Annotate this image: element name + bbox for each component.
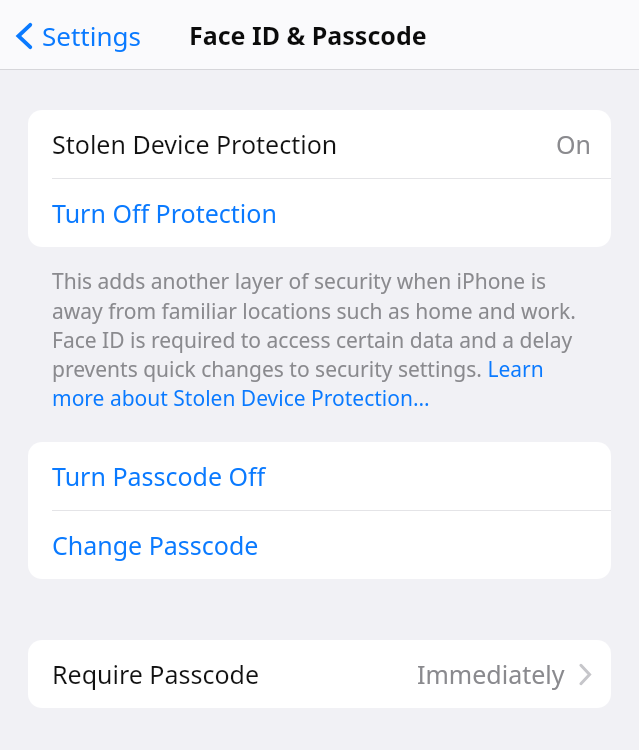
button[interactable]: Turn Passcode Off [28,442,611,510]
staticText: Turn Off Protection [52,196,277,230]
button[interactable]: Turn Off Protection [28,179,611,247]
staticText: On [556,127,591,161]
staticText: Change Passcode [52,528,259,562]
staticText: Immediately [417,657,565,691]
button[interactable]: Settings [10,12,151,59]
other: Open Require Passcode options [579,664,591,685]
staticText: This adds another layer of security when… [52,267,593,412]
staticText: Settings [42,18,141,53]
button[interactable]: This adds another layer of security when… [52,267,593,412]
staticText: Turn Passcode Off [52,459,266,493]
staticText: Require Passcode [52,657,260,691]
staticText: Face ID & Passcode [189,18,427,52]
button[interactable]: Change Passcode [28,511,611,579]
button[interactable]: Require Passcode [28,640,611,708]
button[interactable]: Stolen Device Protection [28,110,611,178]
staticText: Stolen Device Protection [52,127,338,161]
